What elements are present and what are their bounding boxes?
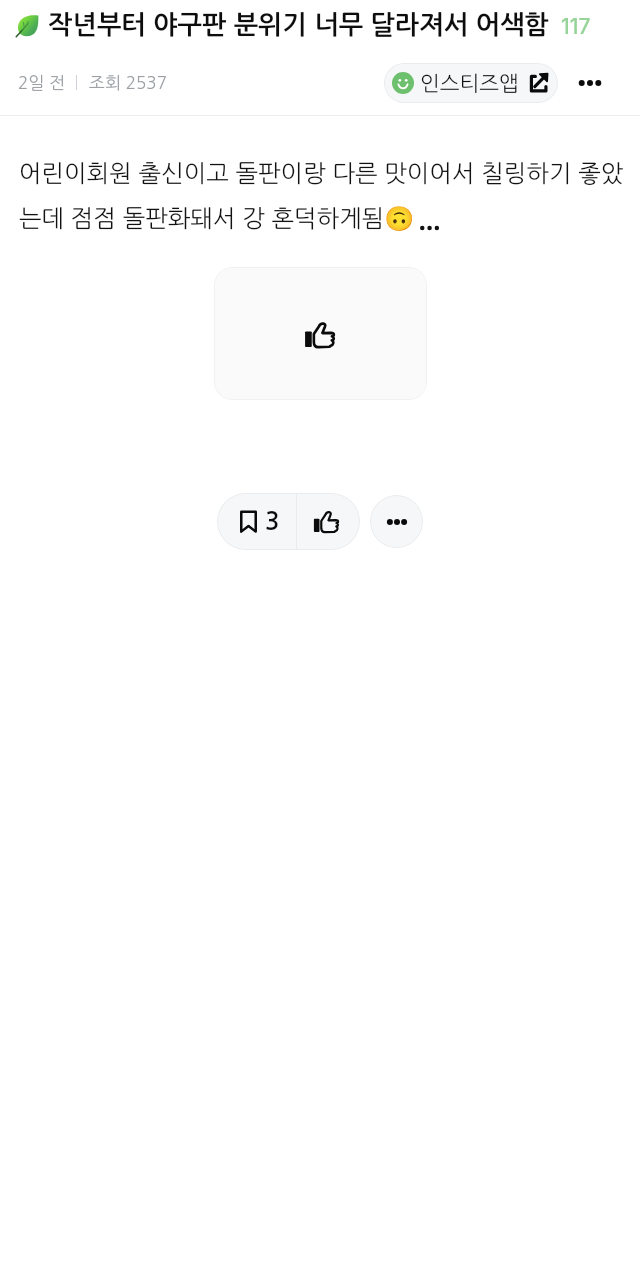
staticText: 3 <box>265 510 280 534</box>
button[interactable]: More <box>370 495 423 548</box>
staticText: 인스티즈앱 <box>420 73 519 94</box>
staticText: 어린이회원 출신이고 돌판이랑 다른 맛이어서 칠링하기 좋았는데 점점 돌판화… <box>19 161 632 232</box>
staticText: 조회 2537 <box>89 74 167 91</box>
button[interactable]: More options <box>572 65 608 101</box>
staticText: 117 <box>561 14 591 39</box>
staticText: 2일 전 <box>18 74 66 91</box>
button[interactable]: 3 <box>217 493 296 550</box>
button[interactable]: 작년부터 야구판 분위기 너무 달라져서 어색함 <box>0 0 640 50</box>
button[interactable]: 인스티즈앱 <box>384 63 558 103</box>
button[interactable]: Image <box>214 267 427 400</box>
button[interactable]: Like <box>297 493 360 550</box>
staticText: 작년부터 야구판 분위기 너무 달라져서 어색함 <box>48 12 549 38</box>
